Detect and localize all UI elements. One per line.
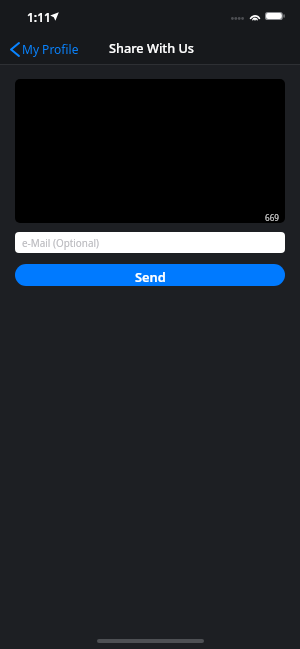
staticText: Share With Us: [109, 39, 194, 56]
staticText: 669: [265, 212, 280, 223]
staticText: 1:11: [27, 9, 51, 25]
staticText: e-Mail (Optional): [22, 236, 100, 249]
button[interactable]: e-Mail (Optional): [15, 232, 285, 253]
button[interactable]: Send: [15, 264, 285, 286]
staticText: My Profile: [22, 41, 79, 57]
button[interactable]: Message: [15, 79, 285, 223]
staticText: Send: [135, 268, 166, 285]
button[interactable]: My Profile: [0, 36, 87, 62]
